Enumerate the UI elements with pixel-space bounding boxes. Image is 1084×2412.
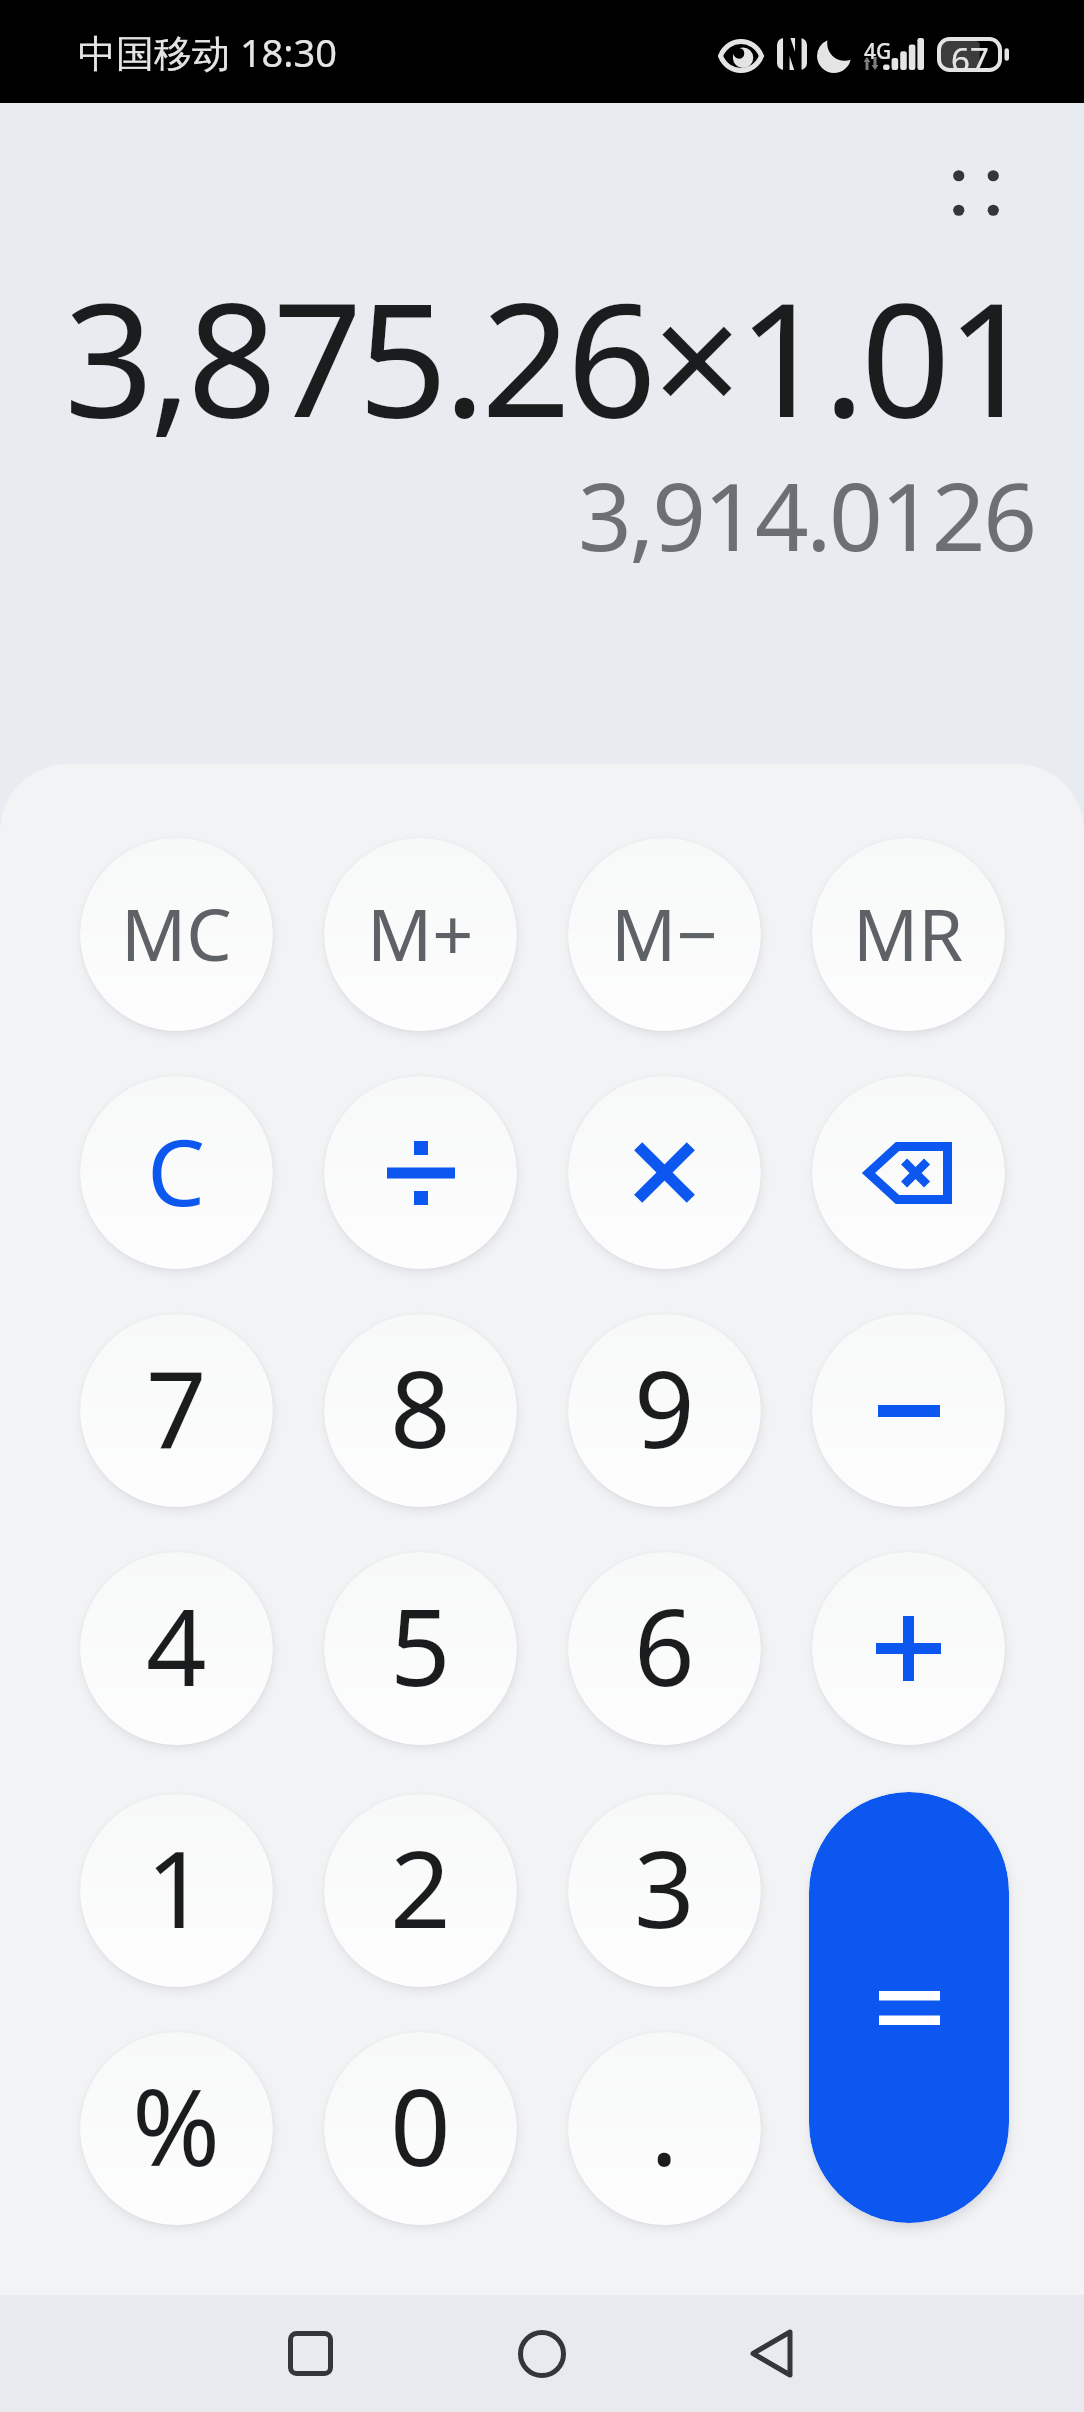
staticText: M+	[367, 884, 474, 982]
button[interactable]: 9	[568, 1314, 761, 1507]
button[interactable]: 1	[80, 1794, 273, 1987]
button[interactable]: 3	[568, 1794, 761, 1987]
button[interactable]: 6	[568, 1552, 761, 1745]
staticText: 3	[634, 1815, 695, 1959]
staticText: MC	[121, 884, 232, 982]
button[interactable]: 2	[324, 1794, 517, 1987]
staticText: 5	[390, 1573, 451, 1717]
staticText: 1	[146, 1815, 207, 1959]
staticText: 2	[390, 1815, 451, 1959]
staticText: %	[132, 2053, 221, 2197]
button[interactable]: More options	[922, 139, 1030, 247]
button[interactable]: Divide	[324, 1076, 517, 1269]
button[interactable]: MR	[812, 838, 1005, 1031]
staticText: MR	[853, 884, 964, 982]
staticText: 3,914.0126	[578, 451, 1035, 579]
button[interactable]: Equals	[809, 1792, 1009, 2223]
staticText: 中国移动 18:30	[78, 26, 338, 78]
button[interactable]: Home	[496, 2295, 588, 2412]
button[interactable]: M+	[324, 838, 517, 1031]
button[interactable]: Minus	[812, 1314, 1005, 1507]
staticText: .	[650, 2053, 679, 2197]
button[interactable]: Recent apps	[264, 2295, 356, 2412]
button[interactable]: 0	[324, 2032, 517, 2225]
button[interactable]: Plus	[812, 1552, 1005, 1745]
staticText: 8	[390, 1335, 451, 1479]
button[interactable]: Back	[725, 2295, 817, 2412]
staticText: 67	[951, 37, 989, 72]
staticText: 3,875.26×1.01	[64, 249, 1032, 463]
button[interactable]: Backspace	[812, 1076, 1005, 1269]
button[interactable]: 4	[80, 1552, 273, 1745]
staticText: M−	[611, 884, 718, 982]
button[interactable]: Multiply	[568, 1076, 761, 1269]
staticText: 9	[634, 1335, 695, 1479]
button[interactable]: M−	[568, 838, 761, 1031]
button[interactable]: 8	[324, 1314, 517, 1507]
button[interactable]: 5	[324, 1552, 517, 1745]
staticText: 6	[634, 1573, 695, 1717]
staticText: 7	[146, 1335, 207, 1479]
staticText: 4	[146, 1573, 207, 1717]
button[interactable]: 7	[80, 1314, 273, 1507]
button[interactable]: MC	[80, 838, 273, 1031]
button[interactable]: %	[80, 2032, 273, 2225]
staticText: C	[147, 1108, 206, 1233]
button[interactable]: .	[568, 2032, 761, 2225]
button[interactable]: C	[80, 1076, 273, 1269]
staticText: 0	[390, 2053, 451, 2197]
staticText: 4G	[864, 37, 892, 66]
